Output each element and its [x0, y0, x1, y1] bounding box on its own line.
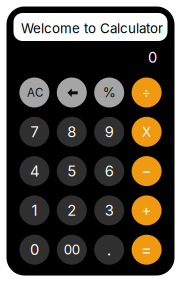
- staticText: 9: [105, 123, 114, 141]
- staticText: 4: [30, 162, 39, 180]
- button[interactable]: 9: [94, 117, 124, 147]
- button[interactable]: AC: [19, 77, 49, 107]
- staticText: %: [103, 84, 116, 100]
- button[interactable]: %: [94, 77, 124, 107]
- button[interactable]: 3: [94, 195, 124, 225]
- button[interactable]: 2: [57, 195, 87, 225]
- button[interactable]: +: [132, 195, 162, 225]
- staticText: AC: [27, 86, 43, 99]
- staticText: X: [142, 124, 151, 140]
- staticText: 0: [148, 48, 157, 66]
- staticText: 7: [30, 123, 38, 141]
- button[interactable]: 6: [94, 156, 124, 186]
- button[interactable]: 7: [19, 117, 49, 147]
- button[interactable]: =: [132, 235, 162, 265]
- button[interactable]: 8: [57, 117, 87, 147]
- staticText: 5: [67, 162, 76, 180]
- button[interactable]: Welcome to Calculator: [13, 13, 167, 41]
- button[interactable]: ÷: [132, 77, 162, 107]
- button[interactable]: X: [132, 117, 162, 147]
- staticText: 8: [67, 123, 76, 141]
- button[interactable]: 1: [19, 195, 49, 225]
- staticText: 2: [67, 201, 76, 219]
- staticText: +: [142, 201, 152, 219]
- button[interactable]: −: [132, 156, 162, 186]
- button[interactable]: 5: [57, 156, 87, 186]
- button[interactable]: 0: [19, 235, 49, 265]
- staticText: .: [107, 240, 112, 259]
- staticText: 6: [105, 162, 114, 180]
- button[interactable]: Backspace: [57, 77, 87, 107]
- staticText: ÷: [142, 84, 151, 100]
- button[interactable]: .: [94, 235, 124, 265]
- staticText: 00: [64, 242, 80, 258]
- staticText: Welcome to Calculator: [21, 20, 163, 36]
- staticText: =: [141, 240, 152, 259]
- staticText: 3: [105, 201, 114, 219]
- staticText: −: [142, 162, 152, 180]
- button[interactable]: 00: [57, 235, 87, 265]
- staticText: 1: [31, 201, 37, 219]
- button[interactable]: 4: [19, 156, 49, 186]
- staticText: 0: [30, 241, 39, 258]
